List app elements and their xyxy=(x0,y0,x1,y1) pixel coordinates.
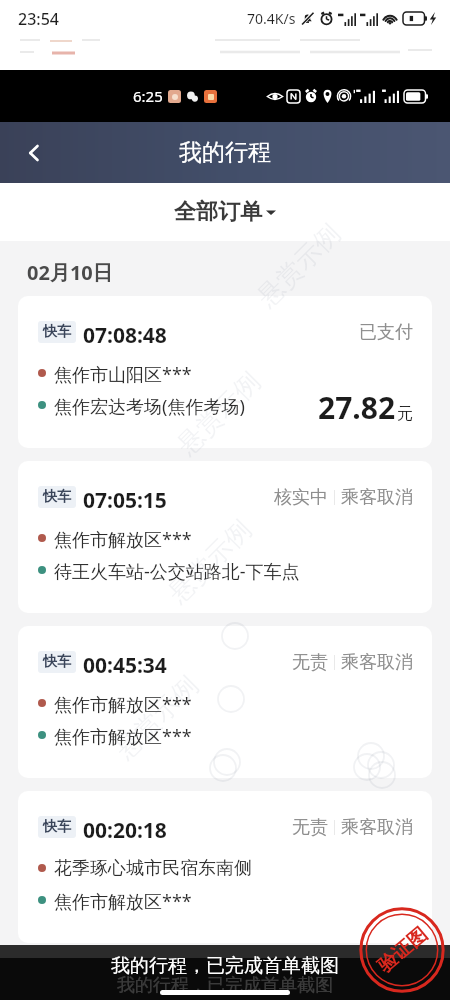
button[interactable]: 快车 xyxy=(18,791,432,943)
button[interactable]: 快车 xyxy=(18,626,432,778)
staticText: 23:54 xyxy=(18,8,59,30)
staticText: 乘客取消 xyxy=(341,651,413,673)
staticText: 无责 xyxy=(292,816,328,838)
staticText: 00:20:18 xyxy=(83,816,167,838)
staticText: 焦作市解放区*** xyxy=(54,527,192,549)
staticText: 07:05:15 xyxy=(83,486,167,508)
staticText: 快车 xyxy=(43,653,71,671)
button[interactable]: 快车 xyxy=(18,461,432,613)
staticText: 27.82 xyxy=(318,387,396,428)
staticText: 焦作市解放区*** xyxy=(54,724,192,746)
staticText: 70.4K/s xyxy=(247,9,296,28)
staticText: 我的行程，已完成首单截图 xyxy=(117,974,333,997)
staticText: 焦作市解放区*** xyxy=(54,889,192,911)
button[interactable]: 快车 xyxy=(18,296,432,448)
staticText: 6:25 xyxy=(133,86,163,106)
staticText: 悬赏示例 xyxy=(171,365,267,462)
staticText: 乘客取消 xyxy=(341,486,413,508)
staticText: 快车 xyxy=(43,323,71,341)
staticText: 乘客取消 xyxy=(341,816,413,838)
staticText: 快车 xyxy=(43,488,71,506)
staticText: 无责 xyxy=(292,651,328,673)
staticText: 核实中 xyxy=(274,486,328,508)
staticText: 已支付 xyxy=(359,321,413,343)
staticText: 快车 xyxy=(43,818,71,836)
staticText: 焦作市解放区*** xyxy=(54,692,192,714)
staticText: 我的行程，已完成首单截图 xyxy=(111,954,339,978)
button[interactable]: 全部订单 xyxy=(0,183,450,241)
staticText: 07:08:48 xyxy=(83,321,167,343)
staticText: 悬赏示例 xyxy=(162,513,258,610)
button[interactable]: Back xyxy=(12,131,56,175)
staticText: 全部订单 xyxy=(174,198,262,226)
staticText: 验证图 xyxy=(373,922,432,977)
staticText: 我的行程 xyxy=(179,138,271,167)
staticText: 02月10日 xyxy=(27,259,113,286)
staticText: 焦作宏达考场(焦作考场) xyxy=(54,394,245,416)
staticText: 悬赏示例 xyxy=(109,669,205,766)
staticText: 花季琢心城市民宿东南侧 xyxy=(54,857,252,879)
staticText: 元 xyxy=(397,404,413,424)
staticText: 待王火车站-公交站路北-下车点 xyxy=(54,559,300,581)
staticText: 焦作市山阳区*** xyxy=(54,362,192,384)
staticText: 00:45:34 xyxy=(83,651,167,673)
staticText: 悬赏示例 xyxy=(251,217,347,314)
